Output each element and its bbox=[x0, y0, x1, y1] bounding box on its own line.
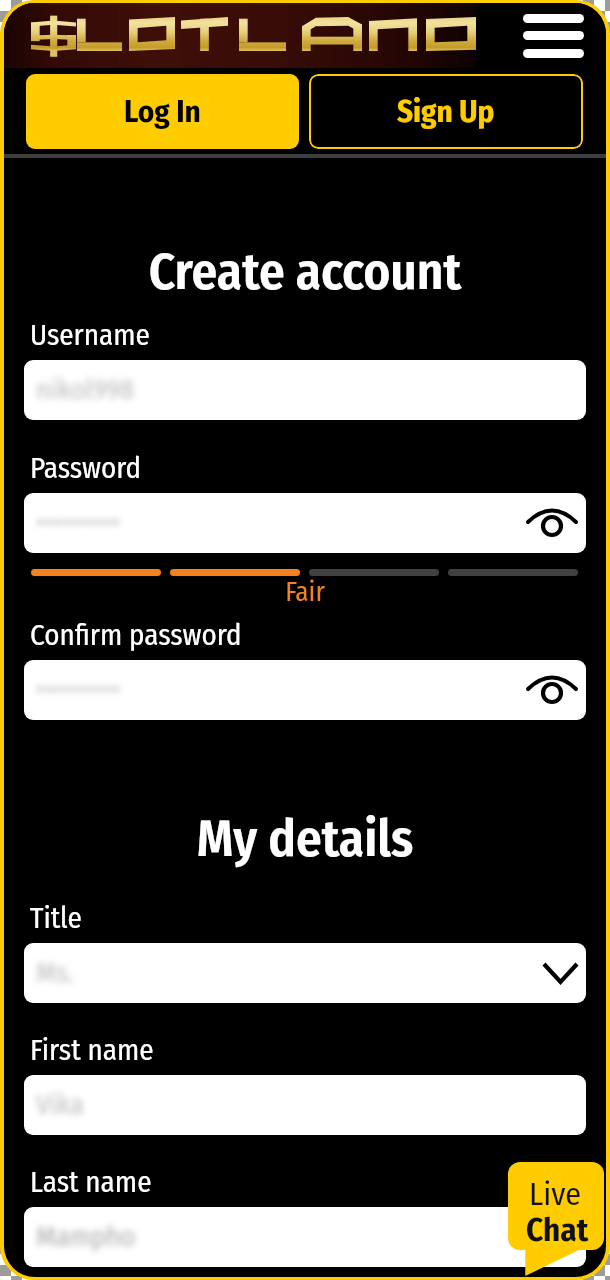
staticText: Title bbox=[30, 901, 82, 936]
button[interactable]: Live Chat bbox=[508, 1162, 604, 1280]
button[interactable]: nikol998 bbox=[24, 360, 586, 420]
staticText: Ms. bbox=[36, 956, 74, 990]
button[interactable]: Ms. bbox=[24, 943, 586, 1003]
staticText: Last name bbox=[30, 1165, 152, 1200]
staticText: •••••••••• bbox=[36, 673, 121, 707]
button[interactable]: •••••••••• bbox=[24, 493, 586, 553]
staticText: Create account bbox=[24, 241, 586, 302]
button[interactable]: Show password bbox=[518, 493, 586, 553]
button[interactable]: Sign Up bbox=[309, 74, 583, 149]
staticText: Fair bbox=[24, 576, 586, 608]
staticText: Sign Up bbox=[397, 93, 495, 130]
button[interactable]: Show password bbox=[518, 660, 586, 720]
button[interactable]: •••••••••• bbox=[24, 660, 586, 720]
button[interactable]: Vika bbox=[24, 1075, 586, 1135]
staticText: Vika bbox=[36, 1088, 84, 1122]
staticText: Live bbox=[529, 1175, 582, 1213]
button[interactable]: Log In bbox=[26, 74, 299, 149]
staticText: Username bbox=[30, 318, 150, 353]
staticText: Password bbox=[30, 451, 142, 486]
staticText: nikol998 bbox=[36, 373, 134, 407]
staticText: Chat bbox=[526, 1210, 589, 1250]
staticText: My details bbox=[24, 808, 586, 869]
staticText: •••••••••• bbox=[36, 506, 121, 540]
staticText: Confirm password bbox=[30, 618, 242, 653]
button[interactable]: Menu bbox=[513, 6, 593, 66]
other: Slotland bbox=[23, 17, 478, 51]
staticText: First name bbox=[30, 1033, 154, 1068]
button[interactable]: Open dropdown bbox=[535, 943, 586, 1003]
staticText: Mampho bbox=[36, 1220, 136, 1254]
staticText: Log In bbox=[124, 93, 201, 130]
button[interactable]: Mampho bbox=[24, 1207, 586, 1267]
